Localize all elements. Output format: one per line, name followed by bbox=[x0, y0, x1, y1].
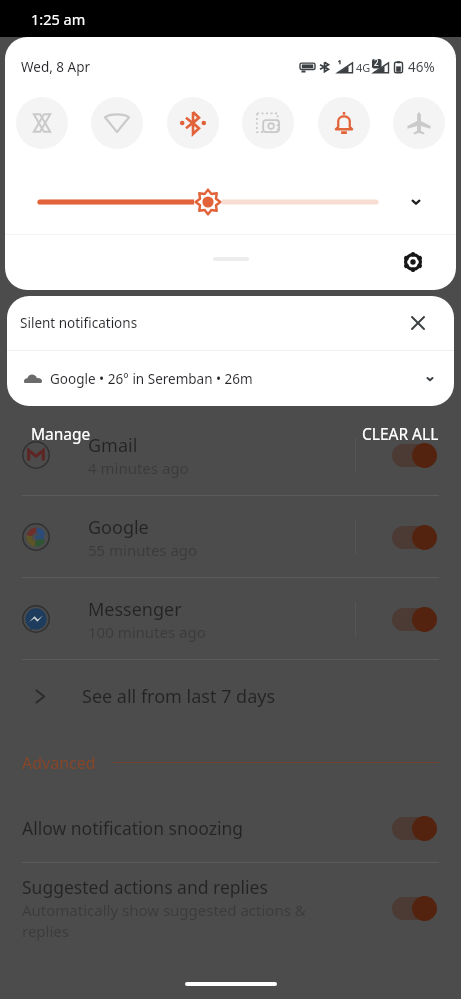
button[interactable]: Close bbox=[404, 309, 432, 337]
staticText: Messenger bbox=[88, 597, 182, 622]
staticText: Google • 26° in Seremban • 26m bbox=[50, 370, 253, 388]
button[interactable]: Manage bbox=[31, 423, 91, 444]
button[interactable]: Mobile data bbox=[16, 97, 68, 149]
staticText: CLEAR ALL bbox=[362, 423, 439, 444]
button[interactable] bbox=[392, 895, 437, 921]
staticText: Wed, 8 Apr bbox=[21, 58, 91, 76]
button[interactable]: Suggested actions and replies bbox=[0, 863, 461, 953]
button[interactable]: Google • 26° in Seremban • 26m bbox=[7, 351, 454, 406]
button[interactable]: Silent notifications bbox=[7, 296, 454, 350]
staticText: Silent notifications bbox=[20, 314, 138, 332]
button[interactable]: Gmail bbox=[0, 414, 461, 496]
staticText: 1:25 am bbox=[31, 9, 86, 29]
staticText: 100 minutes ago bbox=[88, 622, 206, 642]
button[interactable]: Expand brightness bbox=[398, 185, 434, 219]
staticText: 55 minutes ago bbox=[88, 540, 198, 560]
button[interactable]: Messenger bbox=[0, 578, 461, 660]
button[interactable] bbox=[392, 815, 437, 841]
button[interactable]: Allow notification snoozing bbox=[0, 793, 461, 863]
staticText: Automatically show suggested actions & r… bbox=[22, 900, 306, 942]
button[interactable]: Brightness bbox=[38, 185, 378, 219]
button[interactable]: Bluetooth bbox=[167, 97, 219, 149]
staticText: Gmail bbox=[88, 433, 138, 458]
button[interactable]: Screenshot bbox=[242, 97, 294, 149]
button[interactable] bbox=[392, 442, 437, 468]
staticText: 4G bbox=[356, 60, 371, 75]
staticText: Allow notification snoozing bbox=[22, 816, 244, 840]
button[interactable]: Airplane mode bbox=[393, 97, 445, 149]
button[interactable]: See all from last 7 days bbox=[0, 660, 461, 732]
staticText: See all from last 7 days bbox=[82, 684, 276, 709]
button[interactable]: Do not disturb bbox=[318, 97, 370, 149]
staticText: 4 minutes ago bbox=[88, 458, 189, 478]
staticText: 2 bbox=[374, 57, 379, 68]
staticText: 46% bbox=[408, 58, 435, 76]
button[interactable]: Google bbox=[0, 496, 461, 578]
staticText: Advanced bbox=[22, 752, 96, 774]
staticText: Google bbox=[88, 515, 149, 540]
staticText: Manage bbox=[31, 423, 91, 444]
button[interactable]: Wi-Fi bbox=[91, 97, 143, 149]
button[interactable] bbox=[392, 606, 437, 632]
button[interactable]: CLEAR ALL bbox=[362, 423, 439, 444]
button[interactable]: Settings bbox=[396, 245, 430, 279]
button[interactable] bbox=[392, 524, 437, 550]
staticText: Suggested actions and replies bbox=[22, 875, 268, 899]
